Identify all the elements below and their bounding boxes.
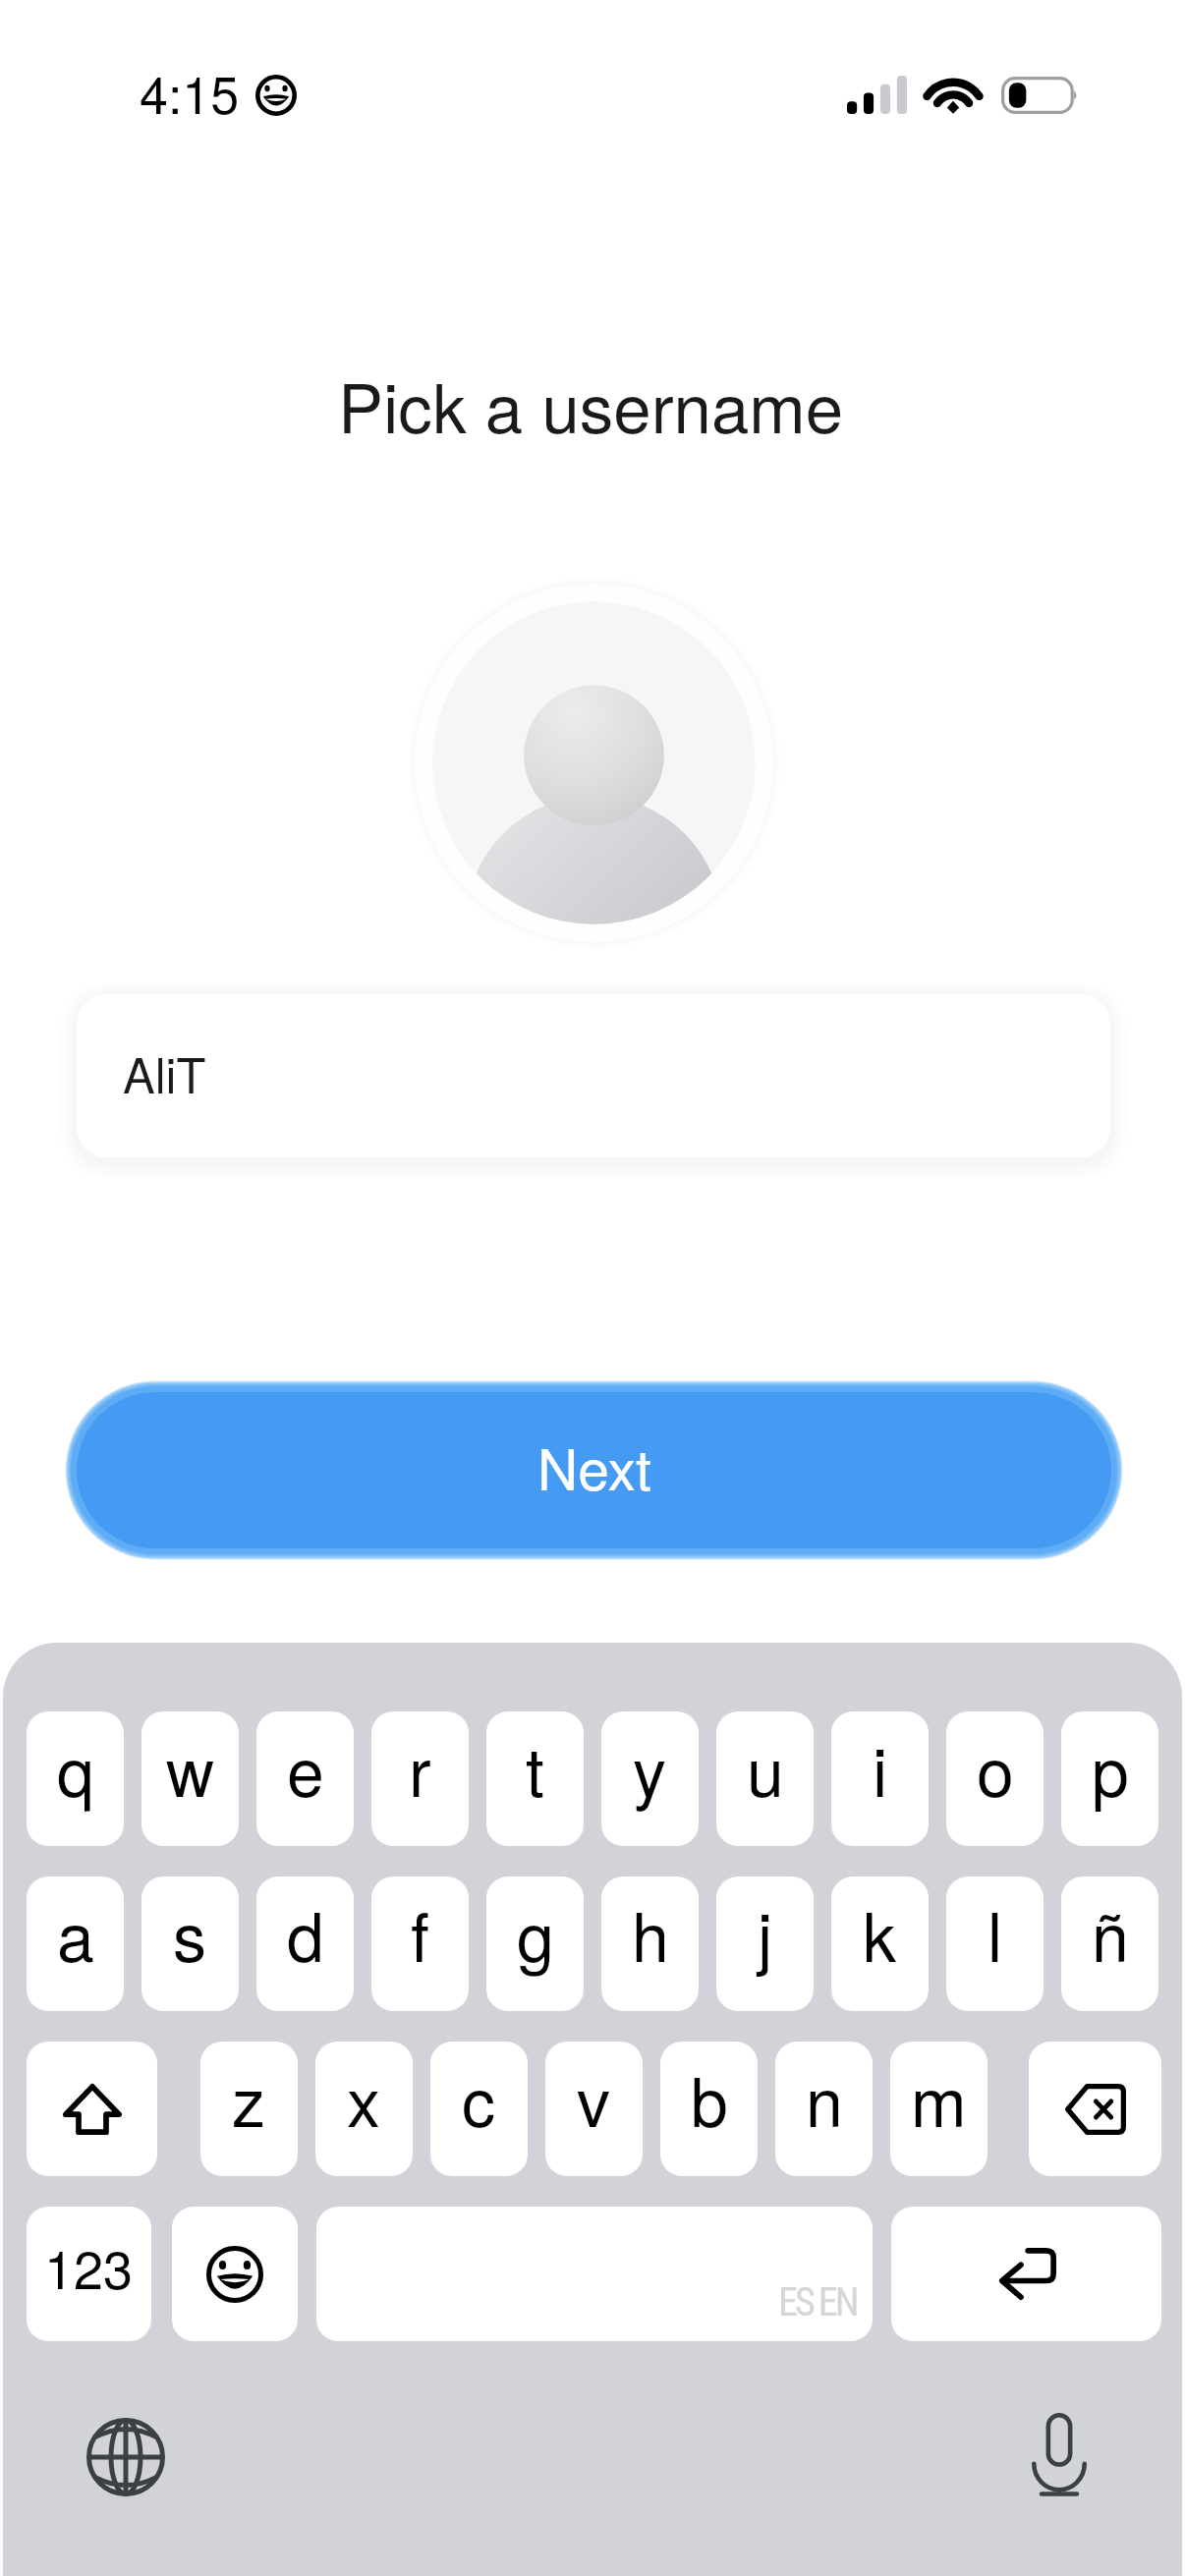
staticText: m xyxy=(911,2050,967,2146)
button[interactable]: n xyxy=(775,2042,873,2176)
staticText: r xyxy=(409,1720,431,1816)
button[interactable]: x xyxy=(315,2042,413,2176)
staticText: d xyxy=(287,1885,324,1981)
staticText: a xyxy=(57,1885,94,1981)
button[interactable]: AliT xyxy=(77,994,1110,1157)
staticText: b xyxy=(691,2050,728,2146)
staticText: g xyxy=(517,1885,554,1981)
staticText: 123 xyxy=(44,2228,134,2304)
button[interactable]: Backspace xyxy=(1029,2042,1161,2176)
button[interactable]: Next xyxy=(77,1392,1111,1548)
button[interactable]: p xyxy=(1061,1711,1158,1846)
staticText: ñ xyxy=(1092,1885,1129,1981)
button[interactable]: g xyxy=(486,1876,584,2011)
button[interactable]: r xyxy=(371,1711,469,1846)
button[interactable]: v xyxy=(545,2042,643,2176)
staticText: o xyxy=(977,1720,1014,1816)
button[interactable]: k xyxy=(831,1876,929,2011)
button[interactable]: Enter xyxy=(891,2207,1161,2341)
staticText: f xyxy=(411,1885,429,1981)
button[interactable]: d xyxy=(256,1876,354,2011)
staticText: Pick a username xyxy=(338,356,844,444)
button[interactable]: c xyxy=(430,2042,528,2176)
button[interactable]: h xyxy=(601,1876,699,2011)
staticText: i xyxy=(873,1720,888,1816)
staticText: e xyxy=(287,1720,324,1816)
staticText: k xyxy=(863,1885,897,1981)
button[interactable]: f xyxy=(371,1876,469,2011)
button[interactable]: b xyxy=(660,2042,758,2176)
button[interactable]: s xyxy=(141,1876,239,2011)
button[interactable]: l xyxy=(946,1876,1044,2011)
staticText: s xyxy=(173,1885,207,1981)
button[interactable]: t xyxy=(486,1711,584,1846)
staticText: n xyxy=(806,2050,843,2146)
staticText: j xyxy=(758,1885,773,1981)
staticText: w xyxy=(166,1720,215,1816)
button[interactable]: e xyxy=(256,1711,354,1846)
staticText: y xyxy=(633,1720,667,1816)
staticText: z xyxy=(232,2050,266,2146)
staticText: h xyxy=(632,1885,669,1981)
button[interactable]: m xyxy=(890,2042,987,2176)
button[interactable]: o xyxy=(946,1711,1044,1846)
button[interactable]: q xyxy=(27,1711,124,1846)
staticText: p xyxy=(1092,1720,1129,1816)
button[interactable]: w xyxy=(141,1711,239,1846)
button[interactable]: a xyxy=(27,1876,124,2011)
staticText: u xyxy=(747,1720,784,1816)
button[interactable]: j xyxy=(716,1876,814,2011)
staticText: Next xyxy=(537,1427,651,1507)
staticText: c xyxy=(462,2050,496,2146)
button[interactable]: Emoji xyxy=(172,2207,298,2341)
button[interactable]: i xyxy=(831,1711,929,1846)
staticText: ES EN xyxy=(778,2279,857,2325)
button[interactable]: 123 xyxy=(27,2207,151,2341)
staticText: v xyxy=(577,2050,611,2146)
button[interactable]: ñ xyxy=(1061,1876,1158,2011)
button[interactable]: Change language xyxy=(86,2418,165,2496)
button[interactable]: y xyxy=(601,1711,699,1846)
staticText: AliT xyxy=(123,1038,206,1107)
staticText: x xyxy=(347,2050,381,2146)
button[interactable]: Voice input xyxy=(1032,2413,1087,2496)
staticText: l xyxy=(987,1885,1003,1981)
button[interactable]: Space xyxy=(316,2207,873,2341)
staticText: q xyxy=(57,1720,94,1816)
staticText: t xyxy=(526,1720,544,1816)
staticText: 4:15 xyxy=(140,55,240,128)
button[interactable]: Shift xyxy=(27,2042,157,2176)
button[interactable]: z xyxy=(200,2042,298,2176)
button[interactable]: u xyxy=(716,1711,814,1846)
